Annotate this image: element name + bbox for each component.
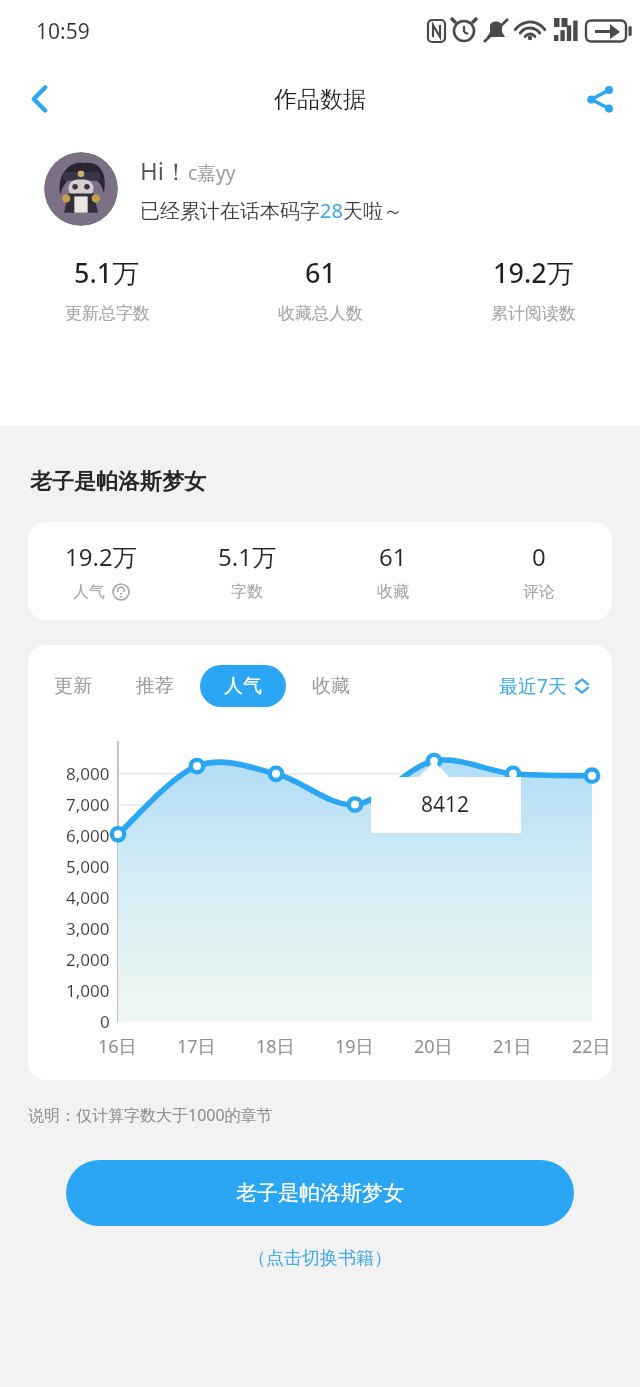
staticText: 10:59 xyxy=(36,17,90,46)
staticText: 8,000 xyxy=(66,762,110,785)
staticText: 5.1万 xyxy=(74,254,140,291)
staticText: 推荐 xyxy=(136,674,174,698)
staticText: 22日 xyxy=(572,1034,611,1059)
button[interactable]: 61 xyxy=(214,254,427,324)
staticText: 18日 xyxy=(256,1034,295,1059)
staticText: 1,000 xyxy=(66,979,110,1002)
staticText: 人气 xyxy=(224,674,262,698)
staticText: 5.1万 xyxy=(218,540,276,573)
staticText: 老子是帕洛斯梦女 xyxy=(30,468,206,496)
staticText: Hi！c嘉yy xyxy=(140,154,236,187)
staticText: 老子是帕洛斯梦女 xyxy=(236,1180,404,1206)
button[interactable]: 19.2万 xyxy=(427,254,640,324)
staticText: 已经累计在话本码字28天啦～ xyxy=(140,197,403,224)
staticText: 3,000 xyxy=(66,917,110,940)
staticText: 更新 xyxy=(54,674,92,698)
staticText: 19.2万 xyxy=(65,540,137,573)
staticText: 19日 xyxy=(335,1034,374,1059)
staticText: 21日 xyxy=(493,1034,532,1059)
staticText: 8412 xyxy=(421,790,470,819)
staticText: 20日 xyxy=(414,1034,453,1059)
button[interactable]: 人气 xyxy=(200,665,286,707)
button[interactable]: 最近7天 xyxy=(495,667,594,705)
staticText: 61 xyxy=(379,540,407,573)
staticText: 17日 xyxy=(177,1034,216,1059)
button[interactable]: 0 xyxy=(466,522,612,620)
staticText: 4,000 xyxy=(66,886,110,909)
staticText: 字数 xyxy=(231,582,263,602)
staticText: 收藏总人数 xyxy=(278,303,363,324)
staticText: 说明：仅计算字数大于1000的章节 xyxy=(28,1104,273,1126)
button[interactable]: Back xyxy=(12,71,68,127)
button[interactable]: 更新 xyxy=(50,665,96,707)
staticText: 5,000 xyxy=(66,855,110,878)
staticText: 收藏 xyxy=(312,674,350,698)
staticText: 16日 xyxy=(98,1034,137,1059)
staticText: 6,000 xyxy=(66,824,110,847)
button[interactable]: 61 xyxy=(320,522,466,620)
staticText: 7,000 xyxy=(66,793,110,816)
button[interactable]: 5.1万 xyxy=(0,254,214,324)
staticText: 收藏 xyxy=(377,582,409,602)
button[interactable]: 收藏 xyxy=(308,665,354,707)
staticText: 累计阅读数 xyxy=(491,303,576,324)
staticText: 2,000 xyxy=(66,948,110,971)
button[interactable]: 19.2万 xyxy=(28,522,174,620)
staticText: 最近7天 xyxy=(499,673,567,699)
staticText: 作品数据 xyxy=(274,85,366,114)
staticText: 更新总字数 xyxy=(65,303,150,324)
staticText: 0 xyxy=(532,540,546,573)
staticText: 61 xyxy=(305,254,336,291)
staticText: 人气 xyxy=(73,582,105,602)
button[interactable]: 5.1万 xyxy=(174,522,320,620)
staticText: 0 xyxy=(100,1010,110,1033)
staticText: 19.2万 xyxy=(493,254,574,291)
button[interactable]: （点击切换书籍） xyxy=(238,1244,402,1273)
button[interactable]: 推荐 xyxy=(132,665,178,707)
button[interactable]: Share xyxy=(572,71,628,127)
staticText: 评论 xyxy=(523,582,555,602)
button[interactable]: 老子是帕洛斯梦女 xyxy=(66,1160,574,1226)
button[interactable]: Hi！c嘉yy xyxy=(44,152,616,226)
